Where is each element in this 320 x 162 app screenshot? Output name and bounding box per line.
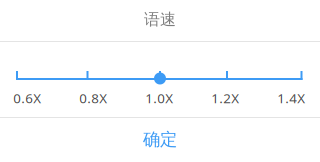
- staticText: 1.2X: [211, 89, 239, 107]
- staticText: 确定: [143, 129, 177, 150]
- staticText: 0.6X: [13, 89, 41, 107]
- button[interactable]: 1.2X: [198, 89, 252, 107]
- button[interactable]: 1.4X: [264, 89, 318, 107]
- button[interactable]: 0.8X: [66, 89, 120, 107]
- button[interactable]: 0.6X: [0, 89, 54, 107]
- staticText: 1.4X: [277, 89, 305, 107]
- button[interactable]: 确定: [0, 117, 320, 161]
- staticText: 语速: [144, 10, 176, 29]
- button[interactable]: 1.0X: [132, 89, 186, 107]
- staticText: 1.0X: [145, 89, 173, 107]
- staticText: 0.8X: [79, 89, 107, 107]
